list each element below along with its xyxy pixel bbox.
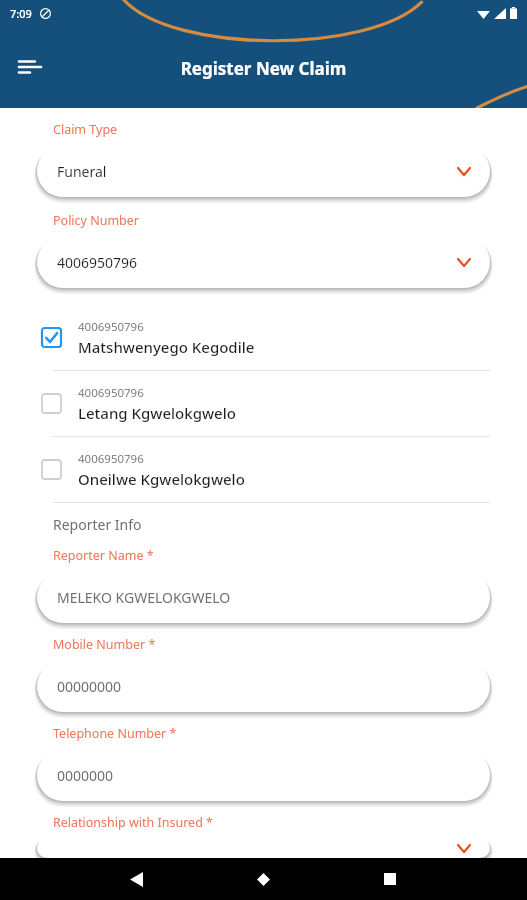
staticText: Oneilwe Kgwelokgwelo [78, 469, 245, 489]
staticText: Funeral [57, 162, 107, 181]
staticText: Telephone Number * [53, 725, 177, 742]
staticText: Policy Number [53, 212, 140, 229]
button[interactable]: Home [243, 859, 283, 899]
button[interactable]: Open navigation menu [8, 45, 52, 89]
staticText: Reporter Name * [53, 547, 154, 564]
staticText: Mobile Number * [53, 636, 156, 653]
button[interactable] [37, 838, 490, 858]
staticText: 4006950796 [78, 451, 144, 467]
staticText: Reporter Info [53, 515, 142, 534]
button[interactable]: Back [116, 859, 156, 899]
button[interactable]: 0000000 [37, 749, 490, 801]
button[interactable]: Funeral [37, 145, 490, 197]
staticText: 7:09 [10, 6, 32, 21]
button[interactable]: 4006950796 [0, 371, 527, 436]
staticText: 0000000 [57, 766, 114, 785]
button[interactable]: 00000000 [37, 660, 490, 712]
button[interactable]: 4006950796 [0, 437, 527, 502]
button[interactable]: MELEKO KGWELOKGWELO [37, 571, 490, 623]
button[interactable]: 4006950796 [37, 236, 490, 288]
staticText: Claim Type [53, 121, 118, 138]
staticText: MELEKO KGWELOKGWELO [57, 588, 231, 607]
staticText: 00000000 [57, 677, 122, 696]
staticText: Matshwenyego Kegodile [78, 337, 255, 357]
staticText: 4006950796 [57, 253, 138, 272]
button[interactable]: 4006950796 [0, 305, 527, 370]
staticText: 4006950796 [78, 319, 144, 335]
staticText: Register New Claim [0, 57, 527, 80]
staticText: Relationship with Insured * [53, 814, 213, 831]
staticText: 4006950796 [78, 385, 144, 401]
button[interactable]: Recent apps [370, 859, 410, 899]
staticText: Letang Kgwelokgwelo [78, 403, 236, 423]
